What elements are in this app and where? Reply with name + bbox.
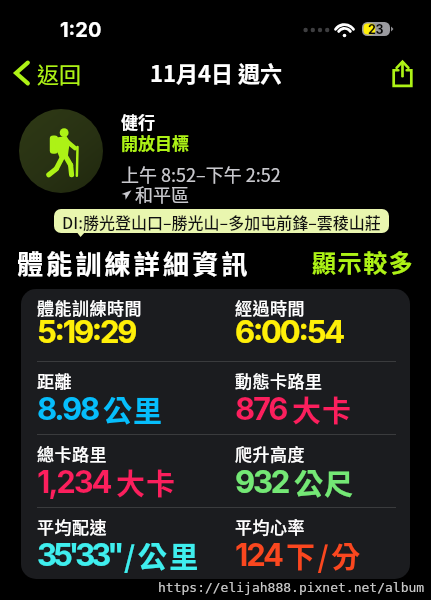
staticText: /公里 — [124, 534, 201, 576]
staticText: 124 — [235, 536, 282, 574]
staticText: 大卡 — [292, 388, 353, 430]
staticText: 動態卡路里 — [235, 368, 323, 393]
staticText: 23 — [368, 22, 384, 36]
staticText: DI:勝光登山口–勝光山–多加屯前鋒–雲稜山莊 — [62, 210, 381, 233]
staticText: 平均配速 — [37, 514, 107, 539]
staticText: 大卡 — [116, 461, 177, 503]
button[interactable]: 返回 — [14, 55, 90, 91]
button[interactable]: Share — [383, 54, 421, 92]
staticText: https://elijah888.pixnet.net/album — [158, 580, 425, 595]
button[interactable]: 爬升高度 — [235, 435, 410, 507]
staticText: 35'33" — [37, 536, 121, 574]
button[interactable]: 動態卡路里 — [235, 362, 410, 434]
staticText: 下/分 — [286, 534, 363, 576]
button[interactable]: 總卡路里 — [37, 435, 215, 507]
staticText: 體能訓練詳細資訊 — [17, 244, 251, 278]
staticText: 距離 — [37, 368, 72, 393]
staticText: 體能訓練時間 — [37, 295, 142, 320]
button[interactable]: 顯示較多 — [312, 244, 415, 278]
staticText: 平均心率 — [235, 514, 305, 539]
staticText: 11月4日 週六 — [150, 56, 282, 88]
staticText: 1,234 — [37, 463, 111, 501]
staticText: 1:20 — [60, 18, 102, 42]
button[interactable]: 體能訓練時間 — [37, 289, 215, 361]
staticText: 健行 — [121, 109, 155, 134]
staticText: 5:19:29 — [37, 313, 136, 351]
staticText: 返回 — [37, 57, 82, 89]
staticText: 6:00:54 — [235, 313, 344, 351]
staticText: 公里 — [103, 388, 164, 430]
staticText: 爬升高度 — [235, 441, 305, 466]
staticText: 上午 8:52–下午 2:52 — [121, 161, 281, 187]
button[interactable]: 平均配速 — [37, 508, 215, 579]
staticText: 876 — [235, 390, 287, 428]
staticText: 經過時間 — [235, 295, 305, 320]
button[interactable]: DI:勝光登山口–勝光山–多加屯前鋒–雲稜山莊 — [54, 209, 389, 233]
button[interactable]: 距離 — [37, 362, 215, 434]
staticText: 和平區 — [135, 181, 189, 207]
staticText: 8.98 — [37, 390, 98, 428]
staticText: 932 — [235, 463, 289, 501]
button[interactable]: 平均心率 — [235, 508, 410, 579]
staticText: 開放目標 — [121, 130, 189, 155]
button[interactable]: 經過時間 — [235, 289, 410, 361]
staticText: 公尺 — [294, 461, 355, 503]
staticText: 總卡路里 — [37, 441, 107, 466]
